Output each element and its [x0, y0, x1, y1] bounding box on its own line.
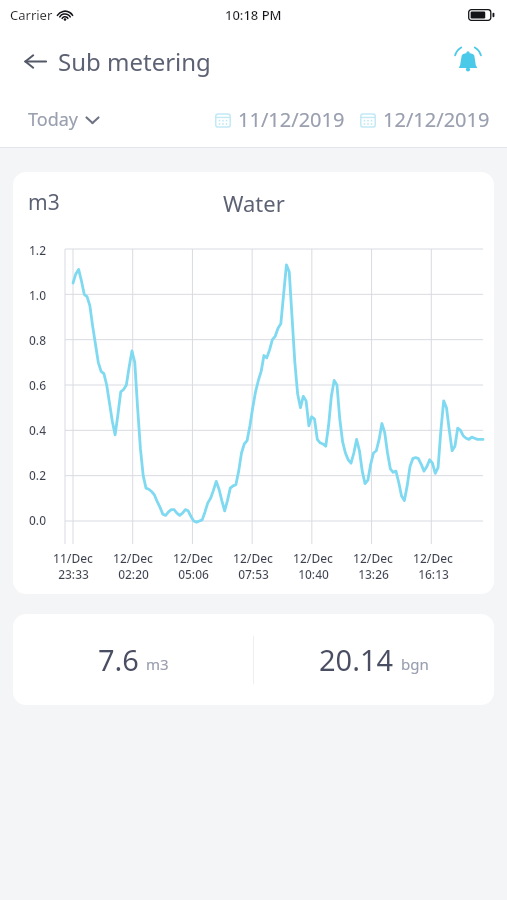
staticText: 20.14 — [319, 640, 394, 679]
staticText: 1.0 — [29, 287, 46, 303]
staticText: m3 — [28, 188, 60, 217]
staticText: 0.6 — [29, 377, 46, 393]
staticText: 7.6 — [98, 640, 139, 679]
staticText: 12/Dec — [173, 550, 213, 566]
button[interactable]: Notifications — [445, 38, 491, 84]
staticText: Today — [28, 107, 78, 132]
staticText: 07:53 — [238, 566, 269, 582]
staticText: Water — [223, 188, 285, 218]
staticText: 0.4 — [29, 422, 46, 438]
staticText: 0.8 — [29, 332, 46, 348]
staticText: 02:20 — [118, 566, 149, 582]
staticText: 12/Dec — [113, 550, 153, 566]
staticText: bgn — [401, 654, 429, 674]
staticText: 12/Dec — [353, 550, 393, 566]
button[interactable]: m3 — [13, 172, 494, 594]
staticText: 11/Dec — [53, 550, 93, 566]
staticText: 10:40 — [298, 566, 329, 582]
staticText: 1.2 — [29, 242, 46, 258]
staticText: Sub metering — [58, 45, 211, 78]
staticText: 23:33 — [58, 566, 89, 582]
staticText: 10:18 PM — [225, 6, 282, 24]
staticText: 11/12/2019 — [238, 106, 345, 133]
staticText: 12/Dec — [293, 550, 333, 566]
staticText: 16:13 — [418, 566, 449, 582]
button[interactable]: 7.6 — [13, 614, 253, 705]
staticText: 0.0 — [29, 512, 46, 528]
staticText: 13:26 — [358, 566, 389, 582]
staticText: 12/Dec — [233, 550, 273, 566]
button[interactable]: 11/12/2019 — [215, 106, 345, 133]
staticText: m3 — [146, 654, 169, 674]
staticText: Carrier — [10, 6, 53, 24]
staticText: 12/Dec — [413, 550, 453, 566]
button[interactable]: Today — [28, 107, 99, 132]
button[interactable]: 12/12/2019 — [360, 106, 490, 133]
staticText: 05:06 — [178, 566, 209, 582]
button[interactable]: 20.14 — [254, 614, 494, 705]
staticText: 12/12/2019 — [383, 106, 490, 133]
button[interactable]: Back — [12, 38, 58, 84]
staticText: 0.2 — [29, 467, 46, 483]
